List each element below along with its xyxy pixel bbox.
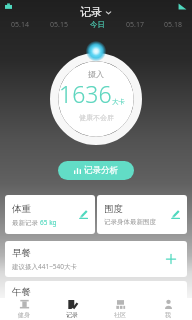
button[interactable]: 05.15	[39, 18, 78, 31]
staticText: 记录分析	[84, 165, 118, 176]
staticText: 我	[165, 311, 171, 319]
staticText: 摄入	[88, 69, 104, 79]
staticText: 健康不会胖	[79, 113, 114, 122]
staticText: 早餐	[12, 247, 31, 259]
staticText: 建议摄入441~540大卡	[12, 262, 78, 271]
staticText: 1636	[59, 78, 112, 109]
button[interactable]: 记录	[72, 3, 120, 21]
staticText: 最新记录	[12, 218, 40, 227]
button[interactable]: 记录分析	[58, 161, 134, 180]
staticText: 体重	[12, 203, 31, 215]
staticText: 社区	[114, 311, 126, 319]
other: Edit 围度	[170, 209, 181, 220]
staticText: 05.17	[126, 20, 144, 30]
button[interactable]: 早餐	[5, 241, 187, 277]
staticText: 记录	[66, 311, 78, 319]
button[interactable]: 体重	[5, 195, 95, 234]
staticText: 记录	[80, 5, 102, 19]
staticText: 05.18	[164, 20, 182, 30]
button[interactable]: 围度	[97, 195, 187, 234]
staticText: 05.14	[11, 20, 29, 30]
staticText: 健身	[18, 311, 30, 319]
button[interactable]: 05.17	[116, 18, 154, 31]
button[interactable]: 05.18	[154, 18, 192, 31]
button[interactable]: 今日	[78, 18, 116, 31]
staticText: 记录身体最新围度	[104, 218, 156, 226]
button[interactable]: 05.14	[0, 18, 39, 31]
button[interactable]: 午餐	[5, 281, 187, 301]
staticText: 围度	[104, 203, 123, 215]
staticText: 65 kg	[40, 218, 57, 227]
button[interactable]: 记录	[48, 298, 96, 320]
staticText: 05.15	[50, 20, 68, 30]
staticText: 今日	[90, 20, 105, 29]
other: Edit 体重	[78, 209, 89, 220]
button[interactable]: 健身	[0, 298, 48, 320]
staticText: 大卡	[112, 98, 125, 106]
other: Add breakfast	[166, 254, 176, 264]
staticText: 午餐	[12, 286, 31, 298]
button[interactable]: 我	[144, 298, 192, 320]
button[interactable]: 社区	[96, 298, 144, 320]
